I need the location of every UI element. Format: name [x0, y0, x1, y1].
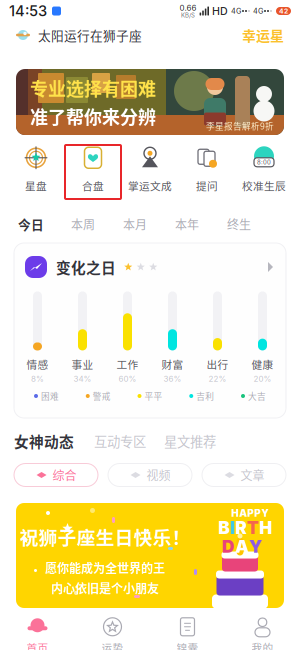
button[interactable]: 视频 [108, 463, 192, 486]
staticText: 我的 [251, 639, 273, 650]
staticText: 工作 [116, 356, 138, 372]
button[interactable]: 查看详情 [266, 261, 275, 273]
staticText: 困难 [41, 390, 59, 402]
staticText: 幸运星 [242, 25, 284, 45]
button[interactable]: 本月 [109, 213, 161, 235]
staticText: I [230, 517, 235, 538]
staticText: 运势 [101, 639, 123, 650]
staticText: HAPPY [231, 507, 269, 519]
button[interactable]: 幸运星 [242, 25, 284, 45]
staticText: H [259, 517, 272, 538]
staticText: 女神动态 [14, 430, 74, 452]
staticText: 大吉 [248, 390, 266, 402]
staticText: 掌运文成 [128, 178, 172, 193]
staticText: 视频 [146, 466, 170, 484]
staticText: 36% [163, 374, 181, 384]
staticText: 0.66 [180, 3, 197, 13]
button[interactable]: 星盘 [8, 145, 64, 199]
button[interactable]: 锦囊 [150, 616, 225, 650]
staticText: 4G [231, 7, 241, 15]
button[interactable]: 今日 [5, 213, 57, 235]
staticText: 祝狮子座生日快乐！ [19, 523, 190, 550]
staticText: 本周 [71, 215, 95, 233]
staticText: 8:00 [257, 159, 271, 166]
staticText: 34% [73, 374, 91, 384]
staticText: 本月 [123, 215, 147, 233]
staticText: 太阳运行在狮子座 [38, 26, 142, 44]
button[interactable]: 终生 [213, 213, 265, 235]
staticText: 财富 [161, 356, 183, 372]
staticText: 20% [253, 374, 271, 384]
button[interactable]: 本年 [161, 213, 213, 235]
staticText: 文章 [240, 466, 264, 484]
staticText: 14:53 [9, 2, 47, 20]
button[interactable]: 提问 [179, 145, 235, 199]
staticText: 健康 [251, 356, 273, 372]
staticText: 专业选择有困难 [30, 75, 156, 101]
button[interactable]: 综合 [14, 463, 98, 486]
staticText: B [218, 517, 230, 538]
staticText: 平平 [144, 390, 162, 402]
button[interactable]: 首页 [0, 616, 75, 650]
staticText: 综合 [52, 466, 76, 484]
staticText: Y [249, 536, 262, 557]
button[interactable]: 文章 [202, 463, 286, 486]
staticText: 终生 [227, 215, 251, 233]
staticText: 星盘 [25, 178, 47, 193]
button[interactable]: 本周 [57, 213, 109, 235]
staticText: 4G [253, 7, 263, 15]
button[interactable]: HAPPY [16, 503, 284, 608]
button[interactable]: 星文推荐 [164, 431, 216, 451]
staticText: T [247, 517, 259, 538]
button[interactable]: 合盘 [65, 145, 121, 199]
staticText: 李星报告解析9折 [206, 119, 274, 132]
staticText: A [235, 536, 249, 557]
staticText: 出行 [206, 356, 228, 372]
staticText: 今日 [18, 215, 44, 233]
staticText: 22% [208, 374, 226, 384]
staticText: 校准生辰 [242, 178, 286, 193]
staticText: 吉利 [196, 390, 214, 402]
staticText: 变化之日 [56, 256, 116, 278]
staticText: 星文推荐 [164, 431, 216, 451]
staticText: R [235, 517, 247, 538]
staticText: 互动专区 [94, 431, 146, 451]
staticText: 合盘 [82, 178, 104, 193]
button[interactable]: 互动专区 [94, 431, 146, 451]
staticText: 提问 [196, 178, 218, 193]
staticText: 42 [279, 7, 288, 15]
button[interactable]: 女神动态 [14, 430, 74, 452]
button[interactable]: 掌运文成 [122, 145, 178, 199]
button[interactable]: 我的 [225, 616, 300, 650]
staticText: 60% [118, 374, 136, 384]
staticText: 锦囊 [176, 640, 198, 650]
staticText: 首页 [26, 640, 48, 650]
button[interactable]: 专业选择有困难 [16, 69, 284, 135]
staticText: 事业 [71, 356, 93, 372]
staticText: D [222, 536, 235, 557]
staticText: HD [212, 4, 228, 17]
staticText: 本年 [175, 215, 199, 233]
staticText: 准了帮你来分辨 [30, 103, 156, 129]
button[interactable]: 运势 [75, 616, 150, 650]
staticText: 愿你能成为全世界的王 [45, 559, 165, 576]
staticText: 警戒 [93, 390, 111, 402]
staticText: 8% [31, 374, 44, 384]
staticText: 内心依旧是个小朋友 [51, 579, 159, 597]
staticText: KB/S [181, 12, 195, 19]
staticText: 情感 [26, 356, 48, 372]
button[interactable]: 8:00 [236, 145, 292, 199]
